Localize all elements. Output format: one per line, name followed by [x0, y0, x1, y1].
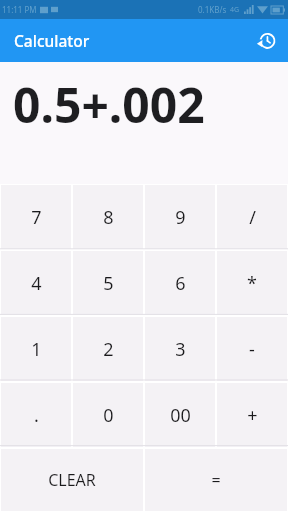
- button[interactable]: 8: [73, 185, 143, 249]
- button[interactable]: 1: [1, 317, 71, 381]
- button[interactable]: +: [217, 383, 287, 447]
- staticText: +: [247, 403, 258, 428]
- staticText: 11:11 PM: [2, 4, 37, 15]
- button[interactable]: *: [217, 251, 287, 315]
- staticText: *: [247, 271, 257, 296]
- staticText: CLEAR: [48, 469, 96, 491]
- button[interactable]: =: [145, 449, 287, 511]
- button[interactable]: -: [217, 317, 287, 381]
- button[interactable]: History: [245, 19, 288, 62]
- staticText: 6: [175, 271, 186, 296]
- staticText: Calculator: [14, 30, 245, 51]
- staticText: 9: [175, 205, 186, 230]
- button[interactable]: 3: [145, 317, 215, 381]
- button[interactable]: 6: [145, 251, 215, 315]
- staticText: 2: [103, 337, 114, 362]
- staticText: 1: [31, 337, 42, 362]
- button[interactable]: 5: [73, 251, 143, 315]
- button[interactable]: 0: [73, 383, 143, 447]
- staticText: 5: [103, 271, 114, 296]
- staticText: /: [249, 205, 256, 230]
- staticText: 0.1KB/s: [198, 4, 227, 15]
- button[interactable]: 7: [1, 185, 71, 249]
- staticText: .: [34, 403, 39, 428]
- staticText: 0: [103, 403, 114, 428]
- button[interactable]: 9: [145, 185, 215, 249]
- staticText: =: [211, 469, 221, 491]
- button[interactable]: .: [1, 383, 71, 447]
- staticText: -: [249, 337, 255, 362]
- staticText: 00: [170, 403, 191, 428]
- button[interactable]: 00: [145, 383, 215, 447]
- staticText: 3: [175, 337, 186, 362]
- staticText: 7: [31, 205, 42, 230]
- staticText: 4G: [230, 5, 240, 15]
- button[interactable]: CLEAR: [1, 449, 143, 511]
- button[interactable]: 2: [73, 317, 143, 381]
- button[interactable]: 4: [1, 251, 71, 315]
- staticText: 0.5+.002: [13, 72, 205, 137]
- staticText: 8: [103, 205, 114, 230]
- button[interactable]: /: [217, 185, 287, 249]
- staticText: 4: [31, 271, 42, 296]
